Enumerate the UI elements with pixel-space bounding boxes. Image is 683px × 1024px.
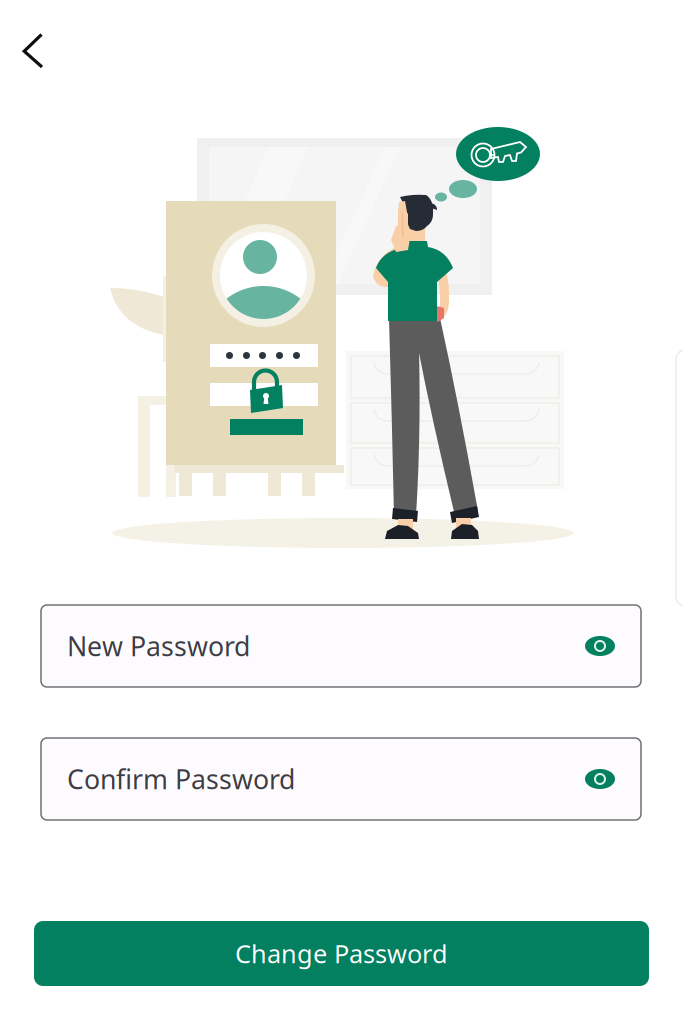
staticText: Change Password	[235, 937, 448, 970]
button[interactable]: Back	[10, 22, 66, 78]
staticText: Confirm Password	[67, 761, 295, 797]
staticText: New Password	[67, 628, 250, 664]
button[interactable]: Confirm Password	[41, 738, 641, 820]
button[interactable]: New Password	[41, 605, 641, 687]
button[interactable]: Change Password	[34, 921, 649, 986]
